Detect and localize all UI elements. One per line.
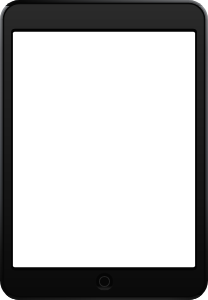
button[interactable]: Home [95,272,114,291]
